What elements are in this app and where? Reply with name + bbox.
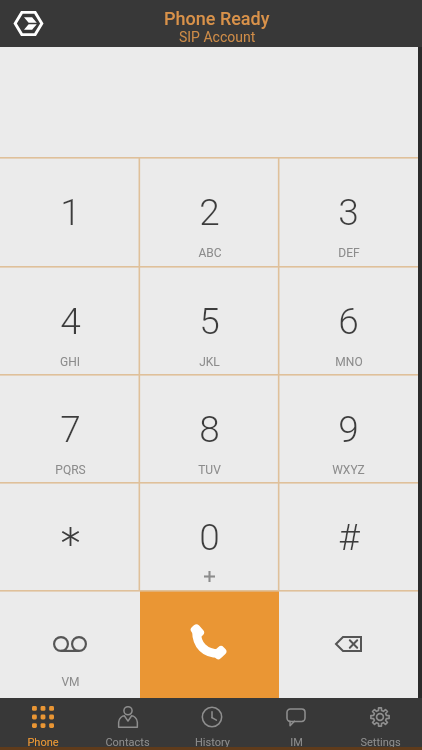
button[interactable] — [0, 482, 140, 590]
staticText: 4 — [60, 300, 81, 343]
staticText: 7 — [60, 408, 81, 451]
staticText: History — [195, 736, 230, 749]
button[interactable]: 4 — [0, 266, 140, 374]
staticText: Phone Ready — [164, 8, 270, 29]
button[interactable]: Settings — [338, 698, 422, 750]
staticText: WXYZ — [332, 463, 365, 477]
staticText: 5 — [199, 300, 220, 343]
button[interactable]: 5 — [140, 266, 279, 374]
staticText: Contacts — [105, 736, 150, 749]
button[interactable]: IM — [254, 698, 338, 750]
button[interactable]: Phone — [0, 698, 85, 750]
button[interactable]: 8 — [140, 374, 279, 482]
staticText: Phone — [27, 736, 59, 749]
button[interactable]: # — [279, 482, 418, 590]
button[interactable]: Voicemail — [0, 590, 140, 698]
staticText: 0 — [199, 516, 220, 559]
button[interactable]: 7 — [0, 374, 140, 482]
staticText: 9 — [338, 408, 359, 451]
button[interactable]: 0 — [140, 482, 279, 590]
staticText: Settings — [360, 736, 401, 749]
button[interactable]: Contacts — [85, 698, 170, 750]
staticText: PQRS — [55, 463, 86, 477]
staticText: 3 — [338, 191, 359, 234]
button[interactable]: 1 — [0, 157, 140, 266]
staticText: GHI — [60, 355, 80, 369]
staticText: 1 — [60, 191, 81, 234]
staticText: JKL — [199, 355, 220, 369]
staticText: IM — [290, 736, 303, 749]
staticText: SIP Account — [179, 29, 256, 45]
staticText: VM — [61, 675, 80, 689]
button[interactable]: 9 — [279, 374, 418, 482]
button[interactable]: Backspace — [279, 590, 418, 698]
button[interactable]: 2 — [140, 157, 279, 266]
button[interactable]: 3 — [279, 157, 418, 266]
staticText: 2 — [199, 191, 220, 234]
button[interactable]: App menu — [14, 9, 43, 38]
staticText: # — [338, 516, 360, 559]
staticText: 6 — [338, 300, 359, 343]
staticText: DEF — [338, 246, 360, 260]
staticText: MNO — [335, 355, 363, 369]
button[interactable]: History — [170, 698, 254, 750]
staticText: TUV — [198, 463, 221, 477]
staticText: ABC — [198, 246, 222, 260]
button[interactable]: Call — [140, 590, 279, 698]
staticText: 8 — [199, 408, 220, 451]
button[interactable]: 6 — [279, 266, 418, 374]
